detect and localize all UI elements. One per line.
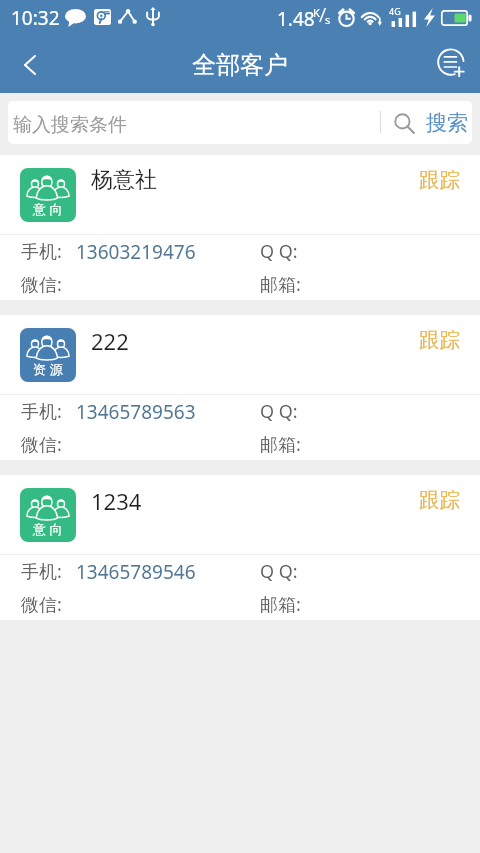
staticText: 意 向 xyxy=(33,200,63,218)
staticText: 手机: xyxy=(21,559,62,584)
staticText: 微信: xyxy=(21,432,62,457)
staticText: s xyxy=(325,12,331,27)
staticText: 全部客户 xyxy=(192,50,288,80)
staticText: 1234 xyxy=(91,486,142,516)
staticText: 邮箱: xyxy=(260,432,301,457)
staticText: 4G xyxy=(389,5,401,17)
staticText: 跟踪 xyxy=(419,327,460,353)
staticText: 手机: xyxy=(21,399,62,424)
staticText: 搜索 xyxy=(426,110,468,136)
staticText: 杨意社 xyxy=(91,166,157,194)
button[interactable]: Add customer xyxy=(424,37,480,93)
button[interactable]: 跟踪 xyxy=(411,319,468,361)
staticText: 13465789563 xyxy=(76,399,196,425)
staticText: 邮箱: xyxy=(260,272,301,297)
staticText: 微信: xyxy=(21,592,62,617)
staticText: 邮箱: xyxy=(260,592,301,617)
staticText: Q Q: xyxy=(260,559,298,584)
staticText: K xyxy=(313,5,320,20)
staticText: 意 向 xyxy=(33,520,63,538)
staticText: 10:32 xyxy=(11,5,60,31)
staticText: Q Q: xyxy=(260,239,298,264)
staticText: Q Q: xyxy=(260,399,298,424)
staticText: 13603219476 xyxy=(76,239,196,265)
staticText: 222 xyxy=(91,326,129,356)
staticText: 输入搜索条件 xyxy=(13,113,127,137)
staticText: 微信: xyxy=(21,272,62,297)
button[interactable]: 意 向 xyxy=(0,475,480,620)
staticText: 手机: xyxy=(21,239,62,264)
staticText: 资 源 xyxy=(33,360,63,378)
button[interactable]: 资 源 xyxy=(0,315,480,460)
staticText: 13465789546 xyxy=(76,559,196,585)
button[interactable]: 意 向 xyxy=(0,155,480,300)
staticText: 1.48 xyxy=(277,6,315,32)
staticText: 跟踪 xyxy=(419,167,460,193)
button[interactable]: 跟踪 xyxy=(411,159,468,201)
staticText: 跟踪 xyxy=(419,487,460,513)
button[interactable]: 跟踪 xyxy=(411,479,468,521)
button[interactable]: 搜索 xyxy=(388,101,472,144)
button[interactable]: Back xyxy=(0,37,56,93)
